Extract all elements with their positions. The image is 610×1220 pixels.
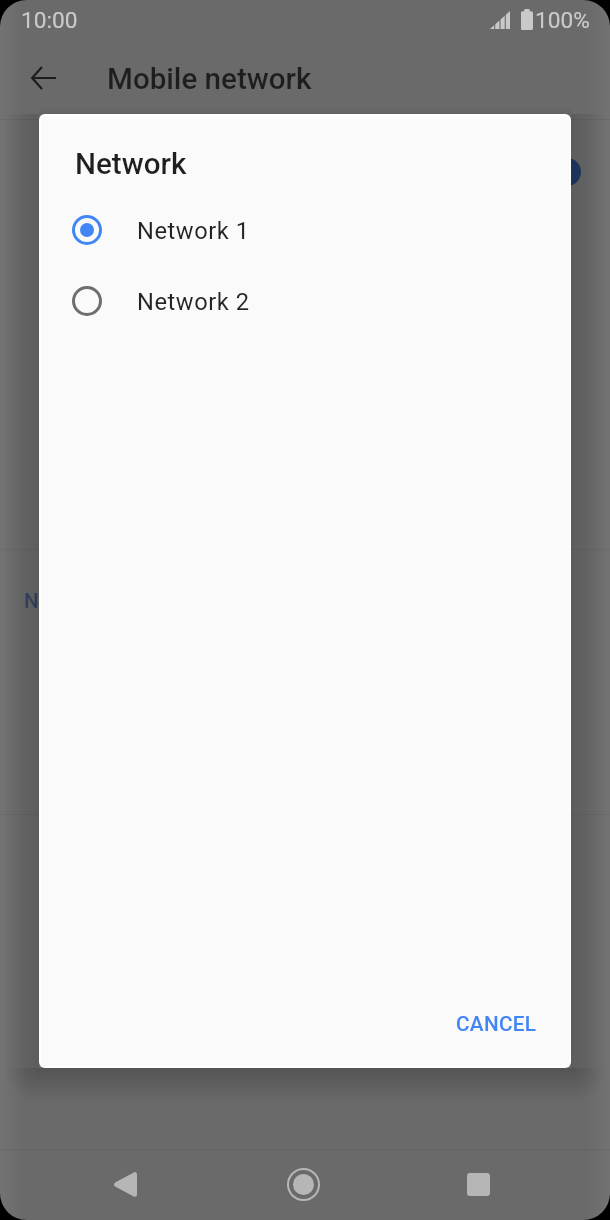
button[interactable]: Recent apps bbox=[443, 1149, 514, 1220]
button[interactable]: CANCEL bbox=[444, 999, 549, 1049]
staticText: Network operators bbox=[24, 589, 197, 613]
button[interactable]: Network 1 bbox=[39, 195, 571, 266]
button[interactable]: Navigate up bbox=[18, 53, 68, 103]
button[interactable]: Back bbox=[90, 1149, 161, 1220]
staticText: Mobile network bbox=[107, 62, 312, 97]
staticText: 10:00 bbox=[21, 7, 78, 34]
staticText: Network 2 bbox=[137, 288, 250, 316]
button[interactable]: Home bbox=[268, 1149, 339, 1220]
staticText: CANCEL bbox=[456, 1012, 537, 1036]
button[interactable]: Network 2 bbox=[39, 266, 571, 337]
staticText: Network 1 bbox=[137, 217, 250, 245]
staticText: 100% bbox=[535, 7, 590, 34]
staticText: Network bbox=[75, 147, 187, 182]
